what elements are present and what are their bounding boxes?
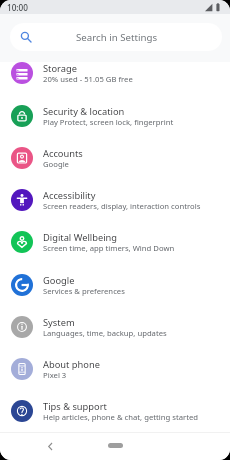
staticText: Search in Settings [32,31,201,44]
staticText: Tips & support [43,400,107,413]
staticText: Pixel 3 [43,370,67,380]
staticText: Security & location [43,105,125,118]
staticText: Accessibility [43,189,96,202]
staticText: 10:00 [7,2,28,13]
button[interactable]: Search in Settings [10,23,222,51]
staticText: 20% used - 51.05 GB free [43,74,133,84]
button[interactable]: Digital Wellbeing [0,221,230,263]
staticText: Screen time, app timers, Wind Down [43,243,175,253]
staticText: Screen readers, display, interaction con… [43,201,201,211]
staticText: System [43,316,75,329]
staticText: Help articles, phone & chat, getting sta… [43,412,199,422]
staticText: Play Protect, screen lock, fingerprint [43,117,174,127]
staticText: Google [43,274,75,287]
button[interactable]: Tips & support [0,390,230,432]
button[interactable]: System [0,306,230,348]
staticText: About phone [43,358,100,371]
staticText: Services & preferences [43,286,125,296]
button[interactable]: Google [0,264,230,306]
staticText: Google [43,159,69,169]
button[interactable]: About phone [0,348,230,390]
staticText: Storage [43,62,77,75]
button[interactable]: Home [108,443,123,448]
staticText: Languages, time, backup, updates [43,328,167,338]
button[interactable]: Security & location [0,95,230,137]
staticText: Digital Wellbeing [43,231,118,244]
button[interactable]: Storage [0,62,230,94]
button[interactable]: Accessibility [0,179,230,221]
button[interactable]: Accounts [0,137,230,179]
button[interactable]: Back [43,439,57,453]
staticText: Accounts [43,147,83,160]
